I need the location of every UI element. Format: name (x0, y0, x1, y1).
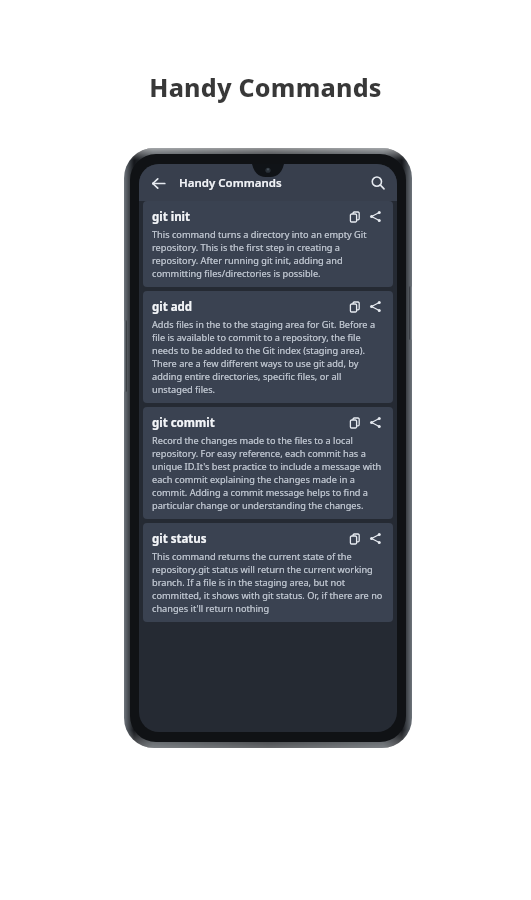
staticText: git commit (152, 415, 346, 431)
staticText: Handy Commands (179, 175, 282, 191)
button[interactable]: Share (367, 414, 384, 431)
staticText: git status (152, 531, 346, 547)
staticText: Record the changes made to the files to … (152, 434, 384, 512)
button[interactable]: Share (367, 298, 384, 315)
button[interactable]: Share (367, 530, 384, 547)
button[interactable]: git init (143, 201, 393, 287)
staticText: Adds files in the to the staging area fo… (152, 318, 384, 396)
button[interactable]: git add (143, 291, 393, 403)
button[interactable]: Copy (346, 530, 363, 547)
staticText: git add (152, 299, 346, 315)
button[interactable]: Copy (346, 208, 363, 225)
staticText: git init (152, 209, 346, 225)
button[interactable]: Share (367, 208, 384, 225)
button[interactable]: Back (145, 170, 171, 196)
button[interactable]: git status (143, 523, 393, 622)
staticText: This command returns the current state o… (152, 550, 384, 615)
staticText: This command turns a directory into an e… (152, 228, 384, 280)
button[interactable]: Copy (346, 414, 363, 431)
staticText: Handy Commands (149, 70, 382, 104)
button[interactable]: Search (365, 170, 391, 196)
button[interactable]: git commit (143, 407, 393, 519)
button[interactable]: Copy (346, 298, 363, 315)
